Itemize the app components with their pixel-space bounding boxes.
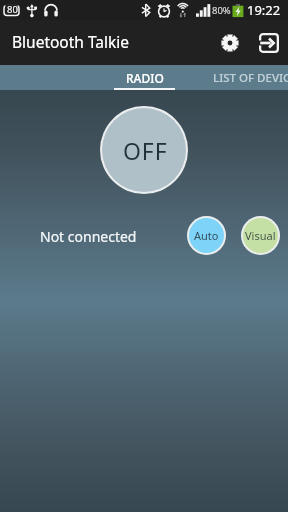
button[interactable]: OFF xyxy=(100,106,188,194)
staticText: Not connected xyxy=(40,227,137,246)
button[interactable]: Visual xyxy=(241,216,280,255)
button[interactable]: Auto xyxy=(187,216,226,255)
button[interactable]: RADIO xyxy=(114,65,175,90)
staticText: 80% xyxy=(212,4,231,17)
staticText: 19:22 xyxy=(247,1,281,19)
button[interactable]: Settings xyxy=(212,20,248,65)
button[interactable]: Exit xyxy=(251,20,287,65)
staticText: LIST OF DEVICES xyxy=(213,70,288,86)
staticText: RADIO xyxy=(126,70,164,86)
staticText: Bluetooth Talkie xyxy=(12,31,130,52)
staticText: Auto xyxy=(194,228,219,243)
staticText: Visual xyxy=(245,228,276,243)
staticText: OFF xyxy=(123,135,168,166)
staticText: 80 xyxy=(7,3,18,16)
button[interactable]: LIST OF DEVICES xyxy=(175,65,288,90)
